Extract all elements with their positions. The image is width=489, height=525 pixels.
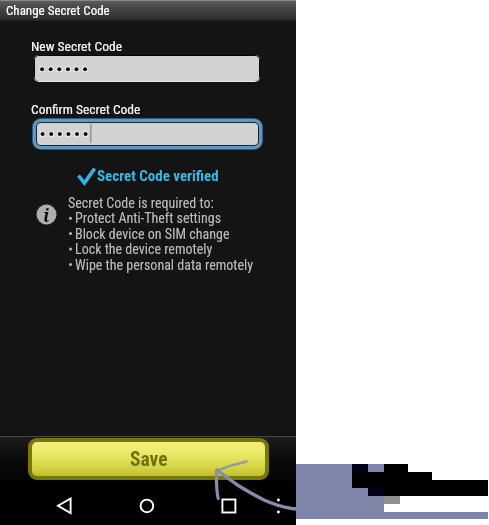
button[interactable] [35, 56, 259, 81]
button[interactable] [37, 123, 258, 145]
staticText: Protect Anti-Theft settings [75, 210, 222, 226]
staticText: i [43, 203, 50, 226]
staticText: Change Secret Code [6, 3, 110, 18]
staticText: Secret Code is required to: [68, 195, 214, 211]
button[interactable]: Change Secret Code [0, 0, 296, 21]
staticText: Save [130, 448, 168, 471]
button[interactable]: Home [127, 481, 167, 525]
staticText: Lock the device remotely [75, 241, 213, 257]
staticText: Wipe the personal data remotely [75, 257, 254, 273]
staticText: New Secret Code [31, 38, 122, 54]
staticText: Secret Code verified [97, 167, 219, 185]
staticText: Confirm Secret Code [31, 101, 141, 117]
button[interactable]: Recent apps [209, 481, 249, 525]
staticText: Block device on SIM change [75, 226, 230, 242]
button[interactable]: Save [32, 442, 265, 476]
button[interactable]: Secret Code verified [77, 166, 219, 186]
button[interactable]: Back [44, 481, 84, 525]
